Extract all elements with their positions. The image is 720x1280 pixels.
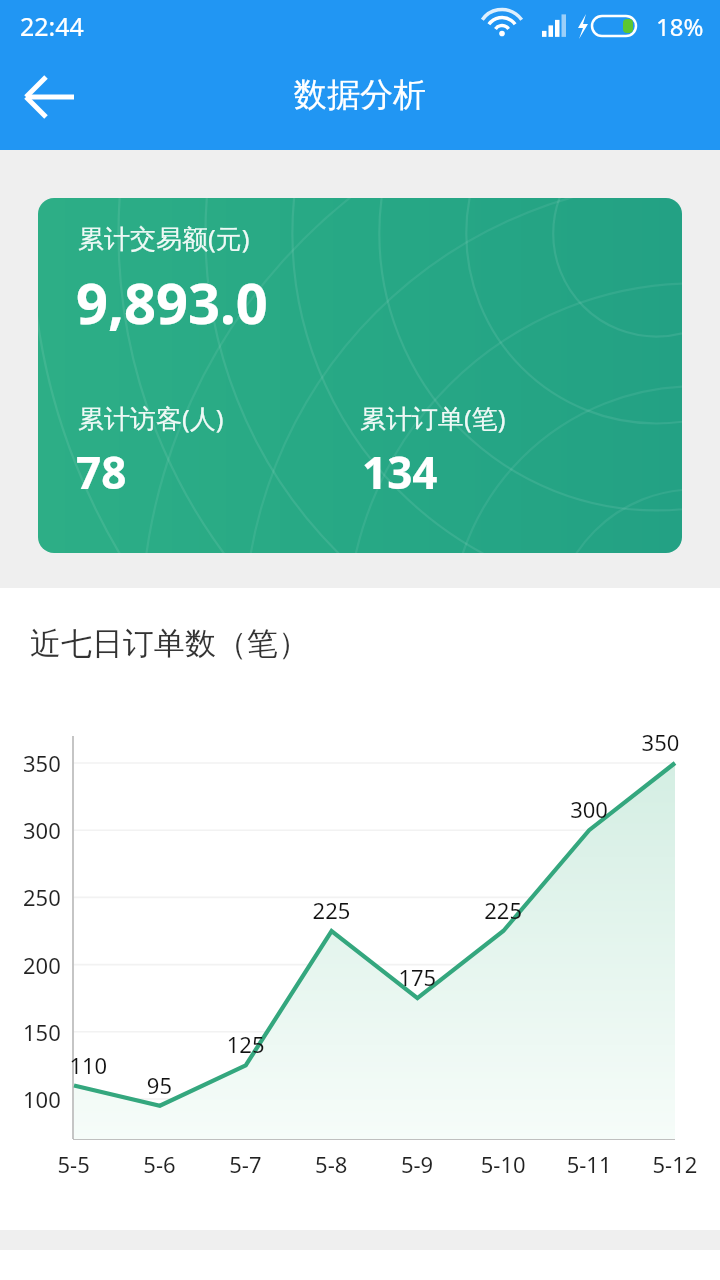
staticText: 9,893.0: [76, 264, 268, 340]
staticText: 134: [362, 442, 438, 502]
staticText: 18%: [656, 10, 704, 43]
staticText: 22:44: [20, 9, 84, 43]
button[interactable]: 累计交易额(元): [38, 198, 682, 553]
staticText: 累计订单(笔): [360, 400, 506, 436]
staticText: 近七日订单数（笔）: [30, 624, 309, 663]
button[interactable]: Back: [14, 62, 90, 132]
staticText: 累计交易额(元): [78, 220, 250, 256]
staticText: 78: [76, 442, 127, 502]
staticText: 累计访客(人): [78, 400, 224, 436]
staticText: 数据分析: [294, 74, 426, 116]
